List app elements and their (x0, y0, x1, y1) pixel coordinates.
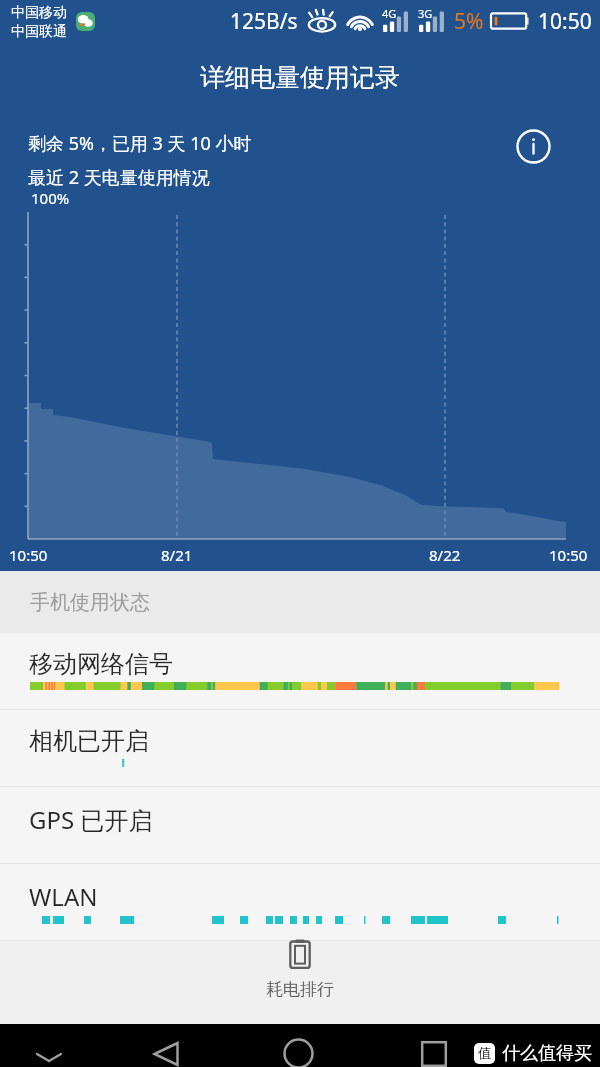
staticText: 100% (31, 188, 70, 208)
button[interactable]: 手机使用状态 (0, 571, 600, 633)
staticText: 最近 2 天电量使用情况 (28, 165, 210, 190)
staticText: 中国联通 (11, 23, 67, 41)
button[interactable]: Hide navigation bar (27, 1035, 71, 1067)
staticText: 3G (418, 6, 433, 21)
staticText: WLAN (29, 880, 98, 913)
staticText: 相机已开启 (29, 726, 149, 756)
staticText: 手机使用状态 (30, 590, 150, 615)
button[interactable]: 移动网络信号 (0, 633, 600, 710)
staticText: 详细电量使用记录 (200, 62, 400, 93)
staticText: 移动网络信号 (29, 649, 173, 679)
staticText: GPS 已开启 (29, 803, 153, 836)
staticText: 中国移动 (11, 4, 67, 22)
staticText: 5% (454, 7, 484, 36)
staticText: 值 (478, 1045, 492, 1063)
staticText: 10:50 (549, 545, 588, 565)
button[interactable]: Back (143, 1032, 189, 1067)
button[interactable]: WLAN (0, 864, 600, 941)
staticText: 什么值得买 (502, 1042, 592, 1065)
staticText: 剩余 5%，已用 3 天 10 小时 (28, 131, 252, 156)
button[interactable]: Recent apps (411, 1032, 457, 1067)
staticText: 8/21 (161, 545, 193, 565)
staticText: 4G (382, 6, 397, 21)
button[interactable]: Info (510, 123, 557, 170)
staticText: 耗电排行 (266, 979, 334, 1000)
staticText: 8/22 (429, 545, 461, 565)
staticText: 10:50 (538, 7, 592, 36)
staticText: 125B/s (230, 7, 298, 36)
button[interactable]: 耗电排行 (0, 941, 600, 1024)
button[interactable]: 相机已开启 (0, 710, 600, 787)
button[interactable]: GPS 已开启 (0, 787, 600, 864)
button[interactable]: Home (275, 1032, 321, 1067)
staticText: 10:50 (9, 545, 48, 565)
